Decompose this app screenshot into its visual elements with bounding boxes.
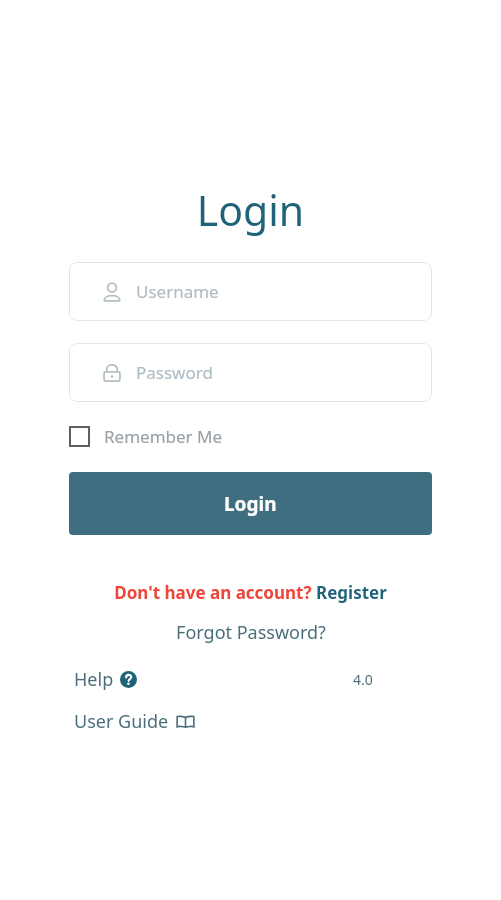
staticText: Don't have an account? Register — [114, 581, 387, 604]
staticText: Remember Me — [104, 425, 223, 448]
button[interactable]: Don't have an account? Register — [0, 581, 501, 604]
staticText: Forgot Password? — [176, 620, 326, 645]
staticText: Password — [136, 361, 213, 384]
staticText: 4.0 — [353, 670, 373, 689]
button[interactable]: Help — [74, 667, 137, 692]
button[interactable]: Login — [69, 472, 432, 535]
button[interactable]: Forgot Password? — [0, 620, 501, 645]
staticText: Login — [0, 182, 501, 238]
other: User Guide — [176, 712, 195, 731]
staticText: Username — [136, 280, 219, 303]
button[interactable]: Password — [69, 343, 432, 402]
staticText: Login — [224, 491, 277, 517]
button[interactable]: Remember Me — [69, 423, 223, 450]
other: Help — [120, 671, 137, 688]
staticText: Help — [74, 667, 114, 692]
staticText: User Guide — [74, 709, 169, 734]
button[interactable]: User Guide — [74, 709, 195, 734]
button[interactable]: Username — [69, 262, 432, 321]
